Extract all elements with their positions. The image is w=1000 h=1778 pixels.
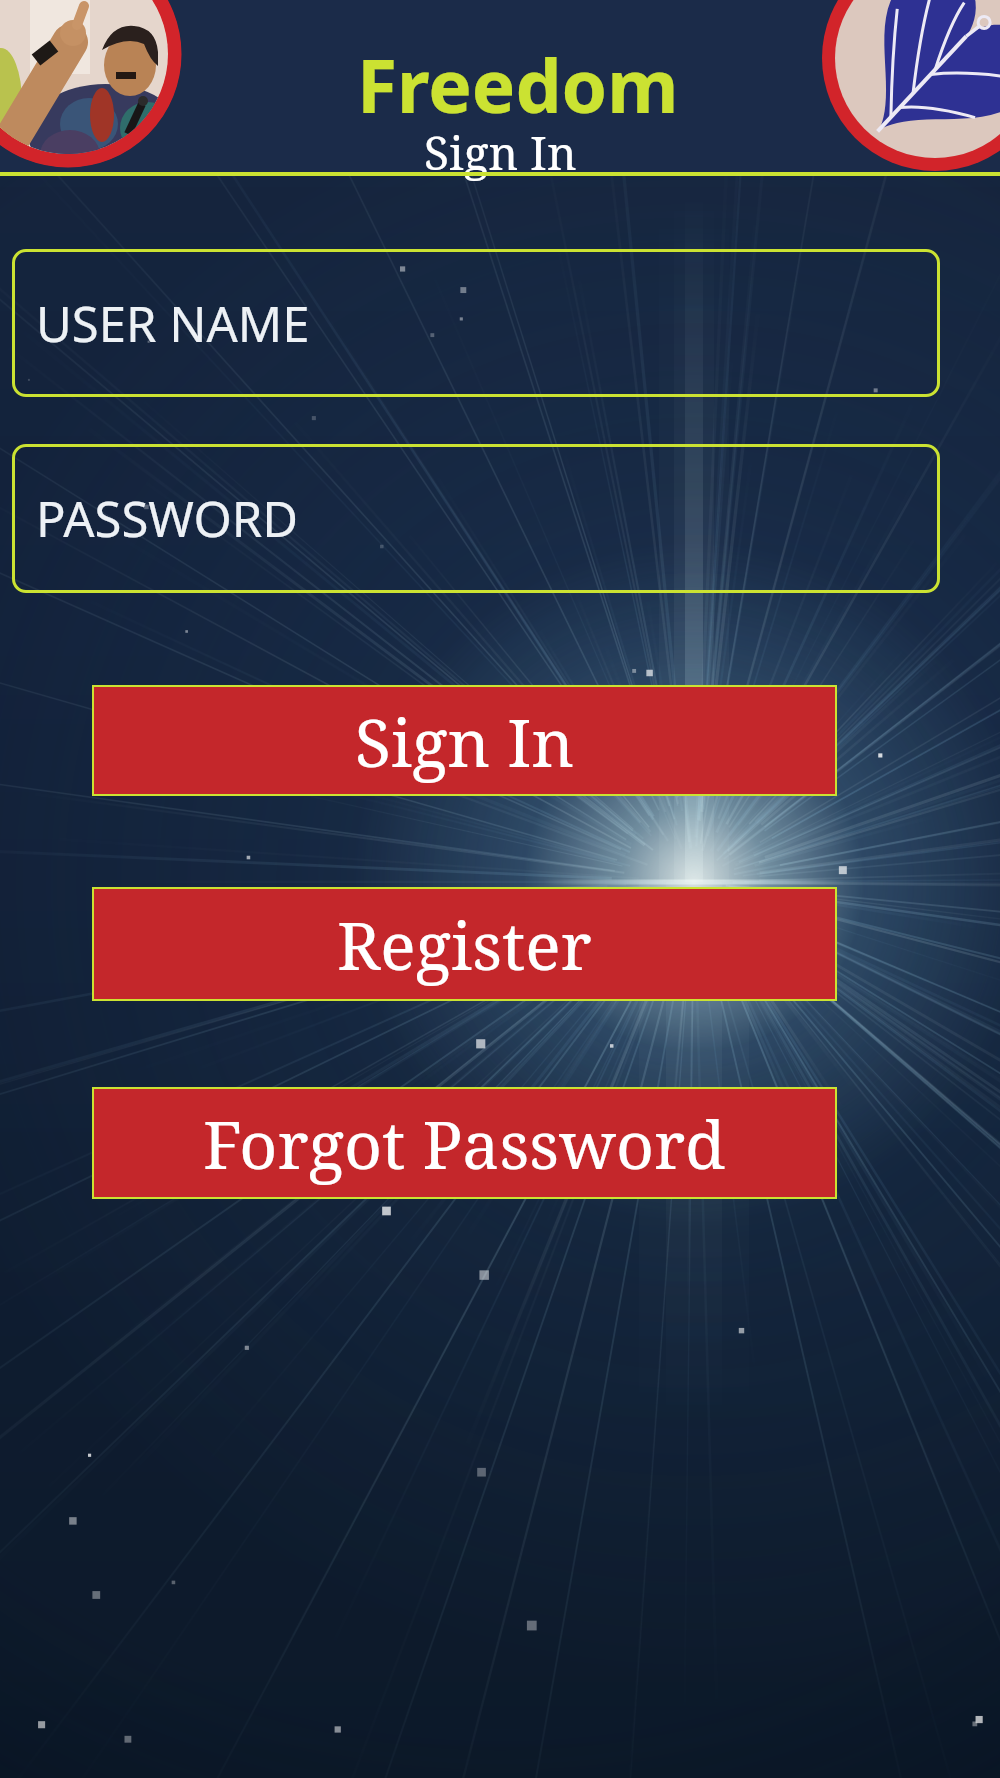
- button[interactable]: Register: [92, 887, 837, 1001]
- staticText: USER NAME: [36, 290, 310, 357]
- staticText: PASSWORD: [36, 485, 298, 552]
- staticText: Sign In: [355, 696, 575, 786]
- staticText: Forgot Password: [203, 1098, 726, 1188]
- button[interactable]: USER NAME: [12, 249, 940, 397]
- button[interactable]: PASSWORD: [12, 444, 940, 593]
- staticText: Register: [337, 899, 592, 989]
- staticText: Sign In: [424, 121, 577, 184]
- staticText: Freedom: [357, 35, 679, 134]
- button[interactable]: Sign In: [92, 685, 837, 796]
- button[interactable]: Forgot Password: [92, 1087, 837, 1199]
